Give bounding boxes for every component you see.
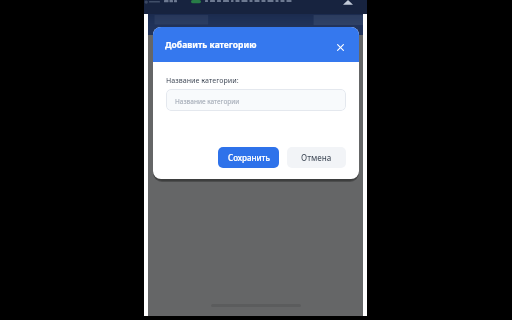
staticText: Добавить категорию (165, 39, 257, 51)
button[interactable]: Название категории (166, 89, 346, 111)
staticText: Название категории (175, 97, 240, 106)
staticText: Отмена (301, 152, 332, 163)
button[interactable]: Close (333, 37, 349, 53)
button[interactable]: Сохранить (218, 147, 279, 168)
staticText: Сохранить (228, 152, 270, 163)
button[interactable]: Отмена (287, 147, 346, 168)
staticText: Название категории: (166, 76, 239, 86)
